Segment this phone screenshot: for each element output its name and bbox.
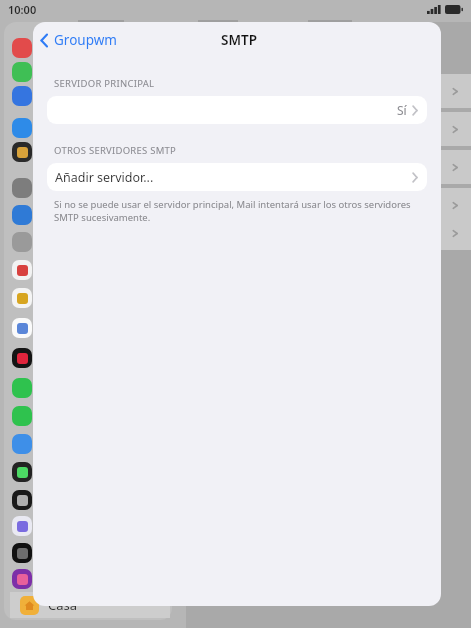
- staticText: OTROS SERVIDORES SMTP: [54, 144, 177, 157]
- staticText: Sí: [397, 102, 407, 118]
- staticText: Añadir servidor...: [55, 169, 154, 186]
- button[interactable]: Groupwm: [33, 27, 125, 53]
- staticText: 10:00: [8, 2, 37, 17]
- button[interactable]: Sí: [47, 96, 427, 124]
- button[interactable]: Añadir servidor...: [47, 163, 427, 191]
- staticText: SERVIDOR PRINCIPAL: [54, 77, 155, 90]
- staticText: SMTP: [221, 31, 257, 49]
- staticText: Si no se puede usar el servidor principa…: [54, 198, 425, 224]
- staticText: Groupwm: [54, 31, 117, 49]
- staticText: Casa: [48, 596, 78, 614]
